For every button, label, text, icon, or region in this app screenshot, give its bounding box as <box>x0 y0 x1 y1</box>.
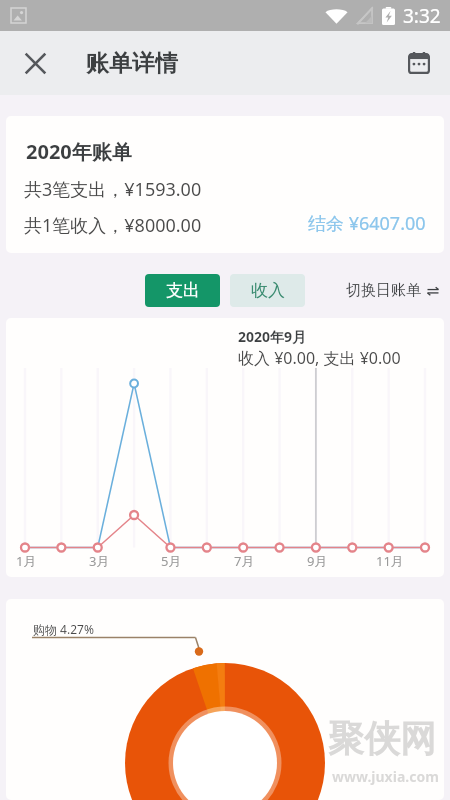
staticText: 切换日账单 <box>346 281 421 300</box>
staticText: 2020年账单 <box>26 138 132 165</box>
button[interactable]: 支出 <box>145 274 220 307</box>
staticText: www.juxia.com <box>332 767 439 786</box>
staticText: 收入 <box>251 280 285 301</box>
staticText: 支出 <box>166 280 200 301</box>
staticText: 9月 <box>307 552 328 570</box>
staticText: 共3笔支出，¥1593.00 <box>24 177 202 202</box>
staticText: 5月 <box>161 552 182 570</box>
staticText: 共1笔收入，¥8000.00 <box>24 213 202 238</box>
button[interactable]: Close <box>17 45 53 81</box>
staticText: 聚侠网 <box>328 716 436 761</box>
staticText: 3:32 <box>403 3 441 29</box>
staticText: 7月 <box>234 552 255 570</box>
staticText: 2020年9月 <box>238 327 307 346</box>
staticText: 账单详情 <box>86 49 178 78</box>
button[interactable]: 收入 <box>230 274 305 307</box>
staticText: 1月 <box>16 552 37 570</box>
staticText: 购物 4.27% <box>33 621 94 637</box>
button[interactable]: 切换日账单 <box>346 281 439 300</box>
staticText: 收入 ¥0.00, 支出 ¥0.00 <box>238 347 401 369</box>
staticText: 3月 <box>89 552 110 570</box>
staticText: 结余 ¥6407.00 <box>308 211 426 236</box>
button[interactable]: Calendar <box>401 45 437 81</box>
staticText: 11月 <box>376 552 404 570</box>
